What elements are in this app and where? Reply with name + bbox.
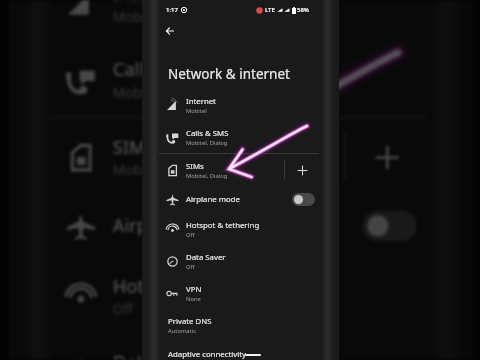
- staticText: Mobitel: [113, 8, 162, 27]
- staticText: Internet: [113, 0, 183, 8]
- staticText: Network & internet: [168, 65, 290, 83]
- button[interactable]: Back: [160, 21, 180, 41]
- staticText: Off: [113, 300, 134, 319]
- staticText: Hotspot & tethering: [186, 220, 260, 231]
- button[interactable]: Data Saver: [159, 245, 319, 277]
- staticText: LTE: [265, 6, 275, 14]
- button[interactable]: Airplane mode: [49, 194, 426, 258]
- button[interactable]: Add SIM: [285, 154, 319, 186]
- staticText: Mobitel, Dialog: [186, 172, 228, 180]
- button[interactable]: Data Saver: [49, 333, 426, 360]
- staticText: Automatic: [168, 327, 196, 335]
- staticText: Data Saver: [113, 350, 207, 360]
- staticText: Private DNS: [168, 316, 212, 327]
- button[interactable]: VPN: [159, 277, 319, 309]
- button[interactable]: Airplane mode: [159, 186, 319, 213]
- staticText: Mobitel: [186, 107, 207, 115]
- button[interactable]: SIMs: [49, 119, 426, 194]
- button[interactable]: Calls & SMS: [49, 41, 426, 116]
- staticText: Adaptive connectivity: [168, 349, 246, 360]
- staticText: Mobitel, Dialog: [113, 83, 212, 102]
- button[interactable]: Airplane mode toggle: [292, 193, 315, 206]
- button[interactable]: Calls & SMS: [159, 121, 319, 153]
- staticText: Calls & SMS: [186, 128, 229, 139]
- staticText: Airplane mode: [186, 194, 240, 205]
- staticText: Internet: [186, 96, 216, 107]
- staticText: Airplane mode: [113, 213, 240, 239]
- button[interactable]: Hotspot & tethering: [49, 258, 426, 333]
- staticText: Off: [186, 231, 195, 239]
- staticText: Calls & SMS: [113, 57, 214, 83]
- staticText: 1:17: [166, 6, 178, 14]
- staticText: Mobitel, Dialog: [113, 161, 212, 180]
- button[interactable]: Add SIM: [346, 119, 426, 194]
- staticText: Mobitel, Dialog: [186, 139, 228, 147]
- staticText: Hotspot & tethering: [113, 274, 287, 300]
- staticText: Off: [186, 263, 195, 271]
- staticText: None: [186, 295, 201, 303]
- staticText: SIMs: [113, 135, 155, 161]
- button[interactable]: Private DNS: [159, 309, 319, 341]
- button[interactable]: Internet: [159, 89, 319, 121]
- staticText: SIMs: [186, 161, 204, 172]
- button[interactable]: Hotspot & tethering: [159, 213, 319, 245]
- button[interactable]: Internet: [49, 0, 426, 41]
- button[interactable]: SIMs: [159, 154, 319, 186]
- staticText: Data Saver: [186, 252, 226, 263]
- staticText: 58%: [297, 6, 309, 14]
- staticText: VPN: [186, 284, 202, 295]
- button[interactable]: Airplane mode toggle: [363, 211, 417, 241]
- button[interactable]: Adaptive connectivity: [159, 341, 319, 360]
